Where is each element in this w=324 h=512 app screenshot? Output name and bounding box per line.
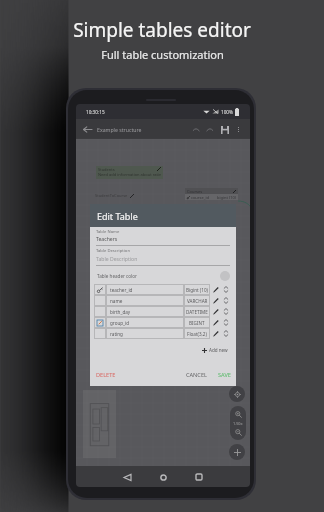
button[interactable]: CANCEL xyxy=(186,371,207,379)
button[interactable]: Reorder column xyxy=(221,284,231,295)
button[interactable]: birth_day xyxy=(94,306,231,317)
staticText: 10:30:15 xyxy=(86,109,105,115)
button[interactable]: Edit column xyxy=(210,306,221,317)
staticText: Table Description xyxy=(96,256,138,263)
staticText: Add new xyxy=(209,347,228,353)
staticText: group_id xyxy=(110,320,130,326)
staticText: Full table customization xyxy=(101,47,224,62)
button[interactable]: Zoom out xyxy=(232,426,245,439)
button[interactable]: More options xyxy=(233,124,244,135)
staticText: rating xyxy=(110,331,123,337)
staticText: DATETIME xyxy=(186,309,208,315)
staticText: teacher_id xyxy=(110,287,133,293)
staticText: StudentToCourse xyxy=(95,193,128,198)
staticText: Simple tables editor xyxy=(73,17,251,43)
button[interactable]: Edit column xyxy=(210,295,221,306)
staticText: Edit Table xyxy=(97,210,138,222)
button[interactable]: Add new xyxy=(202,347,228,353)
button[interactable]: Mini map xyxy=(83,390,116,458)
button[interactable]: Recents xyxy=(191,469,207,485)
button[interactable]: Edit column xyxy=(210,317,221,328)
staticText: birth_day xyxy=(110,309,131,315)
staticText: BIGINT xyxy=(189,320,205,326)
staticText: Students xyxy=(98,167,115,172)
button[interactable]: SAVE xyxy=(218,371,231,379)
button[interactable]: group_id xyxy=(94,317,231,328)
button[interactable]: Reorder column xyxy=(221,306,231,317)
button[interactable]: Reorder column xyxy=(221,317,231,328)
button[interactable]: DELETE xyxy=(96,371,116,379)
button[interactable]: Edit column xyxy=(210,284,221,295)
button[interactable]: Center view xyxy=(229,386,245,402)
staticText: bigint (10) xyxy=(217,195,236,200)
staticText: VARCHAR xyxy=(187,298,208,304)
staticText: Table Description xyxy=(96,248,130,254)
button[interactable]: Save xyxy=(219,124,230,135)
button[interactable]: Redo xyxy=(204,124,215,135)
button[interactable]: Reorder column xyxy=(221,328,231,339)
staticText: Need add information about rating xyxy=(98,172,161,177)
staticText: course_id xyxy=(191,195,209,200)
button[interactable]: Table header color xyxy=(97,268,230,283)
staticText: Float(3,2) xyxy=(187,331,207,337)
button[interactable]: Reorder column xyxy=(221,295,231,306)
staticText: Teachers xyxy=(96,236,118,243)
staticText: Example structure xyxy=(97,126,142,133)
staticText: Table header color xyxy=(97,273,137,279)
staticText: 100% xyxy=(221,109,233,115)
staticText: Bigint (10) xyxy=(186,287,208,293)
button[interactable]: name xyxy=(94,295,231,306)
button[interactable]: Back xyxy=(81,123,94,136)
staticText: name xyxy=(110,298,123,304)
staticText: Courses xyxy=(187,189,203,194)
button[interactable]: Home xyxy=(155,469,171,485)
button[interactable]: Add table xyxy=(229,444,245,460)
button[interactable]: Zoom in xyxy=(232,408,245,421)
button[interactable]: teacher_id xyxy=(94,284,231,295)
button[interactable]: Edit column xyxy=(210,328,221,339)
staticText: 1.50x xyxy=(233,421,243,426)
staticText: Table Name xyxy=(96,229,120,235)
button[interactable]: Undo xyxy=(190,124,201,135)
button[interactable]: rating xyxy=(94,328,231,339)
button[interactable]: Back xyxy=(119,469,135,485)
